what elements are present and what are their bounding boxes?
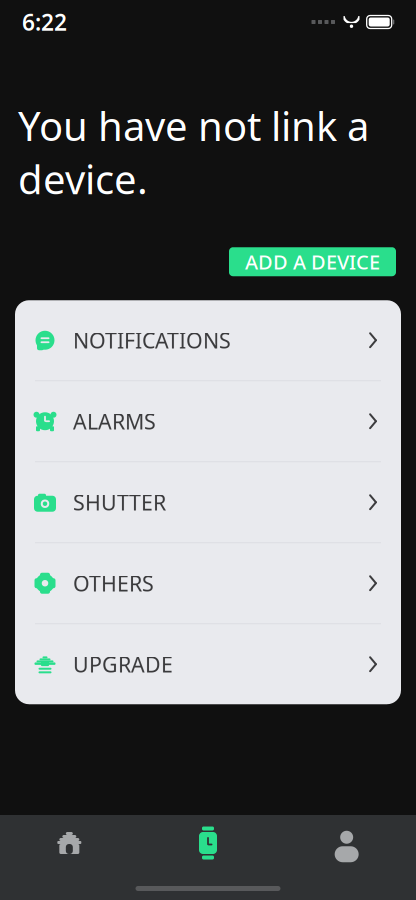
staticText: UPGRADE xyxy=(73,650,173,678)
button[interactable]: ALARMS xyxy=(15,381,401,462)
staticText: NOTIFICATIONS xyxy=(73,326,231,354)
button[interactable]: Device xyxy=(139,818,277,868)
button[interactable]: OTHERS xyxy=(15,543,401,624)
staticText: OTHERS xyxy=(73,569,154,597)
button[interactable]: UPGRADE xyxy=(15,624,401,704)
button[interactable]: NOTIFICATIONS xyxy=(15,300,401,381)
staticText: SHUTTER xyxy=(73,488,166,516)
staticText: ALARMS xyxy=(73,407,156,435)
button[interactable]: SHUTTER xyxy=(15,462,401,543)
staticText: 6:22 xyxy=(22,7,67,37)
button[interactable]: Home xyxy=(0,818,139,868)
staticText: You have not link a device. xyxy=(18,99,369,205)
button[interactable]: ADD A DEVICE xyxy=(229,247,396,276)
staticText: ADD A DEVICE xyxy=(245,248,380,275)
button[interactable]: Profile xyxy=(277,818,416,868)
